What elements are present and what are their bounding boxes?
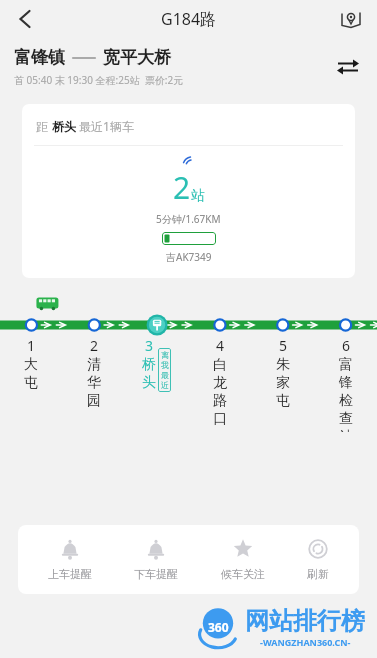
staticText: 1 [27, 336, 36, 355]
staticText: 下车提醒 [134, 567, 178, 581]
staticText: 朱 [276, 356, 290, 374]
staticText: 清 [87, 356, 101, 374]
staticText: 富 [339, 356, 353, 374]
staticText: 头 [142, 374, 156, 392]
staticText: G184路 [161, 8, 217, 30]
staticText: 2 [90, 336, 99, 355]
staticText: 家 [276, 374, 290, 392]
button[interactable]: 1 [0, 336, 62, 432]
staticText: -WANGZHAN360.CN- [260, 636, 351, 648]
staticText: 华 [87, 374, 101, 392]
staticText: 宽平大桥 [103, 47, 171, 68]
button[interactable]: Map [333, 1, 369, 37]
staticText: 吉AK7349 [166, 250, 212, 264]
staticText: 桥头 [52, 119, 76, 134]
staticText: 锋 [339, 374, 353, 392]
staticText: 上车提醒 [48, 567, 92, 581]
button[interactable]: 3 [125, 336, 188, 432]
button[interactable]: 6 [314, 336, 377, 432]
button[interactable]: 5 [251, 336, 314, 432]
button[interactable]: 4 [188, 336, 251, 432]
button[interactable]: 下车提醒 [122, 538, 190, 581]
staticText: 查 [339, 410, 353, 428]
staticText: 路 [213, 392, 227, 410]
button[interactable]: 距 [22, 104, 355, 278]
staticText: 检 [339, 392, 353, 410]
button[interactable]: 刷新 [295, 538, 341, 581]
staticText: 口 [213, 410, 227, 428]
staticText: 站 [339, 428, 353, 432]
staticText: 龙 [213, 374, 227, 392]
staticText: 5 [279, 336, 288, 355]
staticText: 我 [161, 360, 169, 370]
staticText: 4 [216, 336, 225, 355]
staticText: 最近1辆车 [76, 118, 134, 134]
button[interactable]: Swap direction [329, 48, 367, 86]
staticText: 白 [213, 356, 227, 374]
staticText: 5分钟/1.67KM [156, 212, 221, 226]
staticText: 离 [161, 350, 169, 360]
staticText: 3 [145, 336, 154, 355]
staticText: 候车关注 [221, 567, 265, 581]
staticText: 2 [173, 167, 191, 208]
staticText: 刷新 [307, 567, 329, 581]
staticText: 园 [87, 392, 101, 410]
staticText: 站 [191, 187, 205, 205]
staticText: 6 [342, 336, 351, 355]
button[interactable]: 候车关注 [209, 538, 277, 581]
staticText: 首 05:40 末 19:30 全程:25站 票价:2元 [14, 73, 184, 87]
staticText: 距 [36, 118, 52, 134]
staticText: 最 [161, 370, 169, 380]
staticText: 大 [24, 356, 38, 374]
staticText: 富锋镇 [14, 47, 65, 68]
staticText: 近 [161, 380, 169, 390]
button[interactable]: 上车提醒 [36, 538, 104, 581]
staticText: 屯 [24, 374, 38, 392]
staticText: 桥 [142, 356, 156, 374]
staticText: 360 [208, 619, 229, 635]
staticText: 网站排行榜 [245, 606, 365, 636]
button[interactable]: Back [6, 0, 44, 38]
button[interactable]: 2 [62, 336, 125, 432]
staticText: 屯 [276, 392, 290, 410]
